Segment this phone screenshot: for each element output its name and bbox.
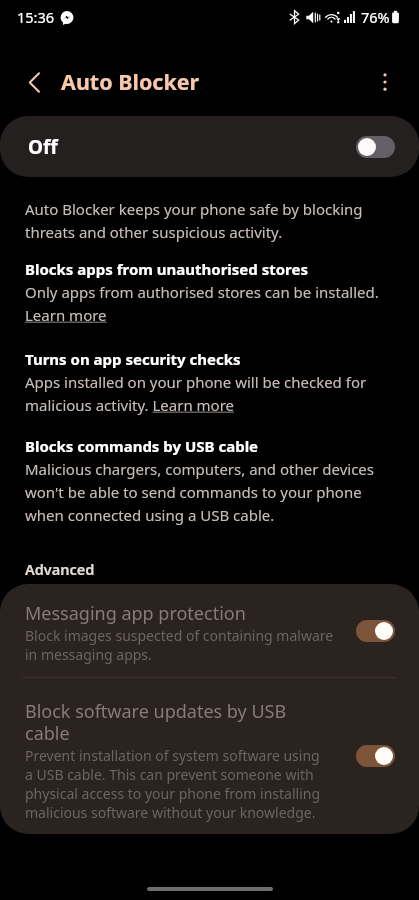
staticText: Advanced (25, 559, 95, 579)
staticText: Block images suspected of containing mal… (25, 626, 334, 664)
staticText: 15:36 (17, 7, 55, 27)
staticText: Blocks commands by USB cable Malicious c… (25, 436, 397, 525)
button[interactable]: Block software updates by USB cable (0, 678, 419, 834)
staticText: Prevent installation of system software … (25, 746, 321, 822)
staticText: Auto Blocker (61, 67, 200, 96)
staticText: Messaging app protection (25, 601, 246, 626)
button[interactable]: Blocks apps from unauthorised stores Onl… (25, 259, 379, 325)
staticText: Block software updates by USB cable (25, 699, 287, 746)
button[interactable]: Navigate up (13, 61, 55, 103)
button[interactable]: Messaging app protection (0, 584, 419, 677)
button[interactable]: Off (356, 136, 395, 158)
button[interactable]: On (356, 745, 395, 767)
staticText: 76% (361, 7, 390, 27)
staticText: Auto Blocker keeps your phone safe by bl… (25, 199, 397, 242)
button[interactable]: More options (364, 61, 406, 103)
button[interactable]: Off (0, 116, 419, 177)
staticText: Off (28, 134, 58, 160)
button[interactable]: On (356, 620, 395, 642)
button[interactable]: Turns on app security checks Apps instal… (25, 349, 397, 415)
